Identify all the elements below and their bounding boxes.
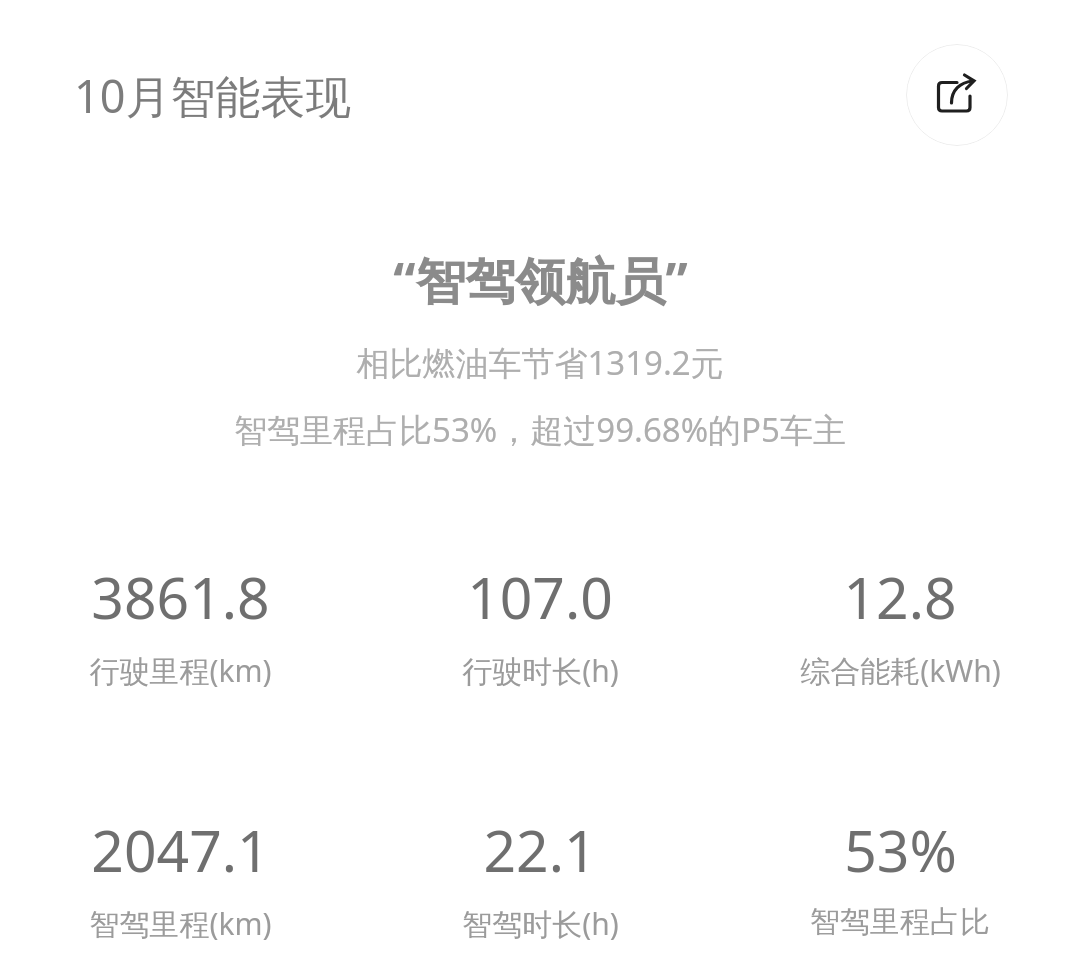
staticText: 相比燃油车节省1319.2元: [356, 340, 724, 385]
staticText: 107.0: [467, 558, 613, 636]
staticText: 智驾里程占比: [810, 903, 990, 941]
staticText: 行驶里程(km): [89, 650, 272, 691]
staticText: “智驾领航员”: [393, 246, 688, 314]
button[interactable]: Share: [906, 44, 1008, 146]
staticText: 智驾里程(km): [89, 903, 272, 944]
staticText: 行驶时长(h): [462, 650, 619, 691]
staticText: 3861.8: [91, 558, 270, 636]
staticText: 智驾里程占比53%，超过99.68%的P5车主: [234, 407, 846, 452]
staticText: 2047.1: [91, 811, 270, 889]
button[interactable]: 10月智能表现: [74, 65, 351, 126]
staticText: 综合能耗(kWh): [800, 650, 1001, 691]
staticText: 22.1: [483, 811, 597, 889]
staticText: 12.8: [843, 558, 957, 636]
staticText: 智驾时长(h): [462, 903, 619, 944]
staticText: 53%: [844, 811, 957, 889]
